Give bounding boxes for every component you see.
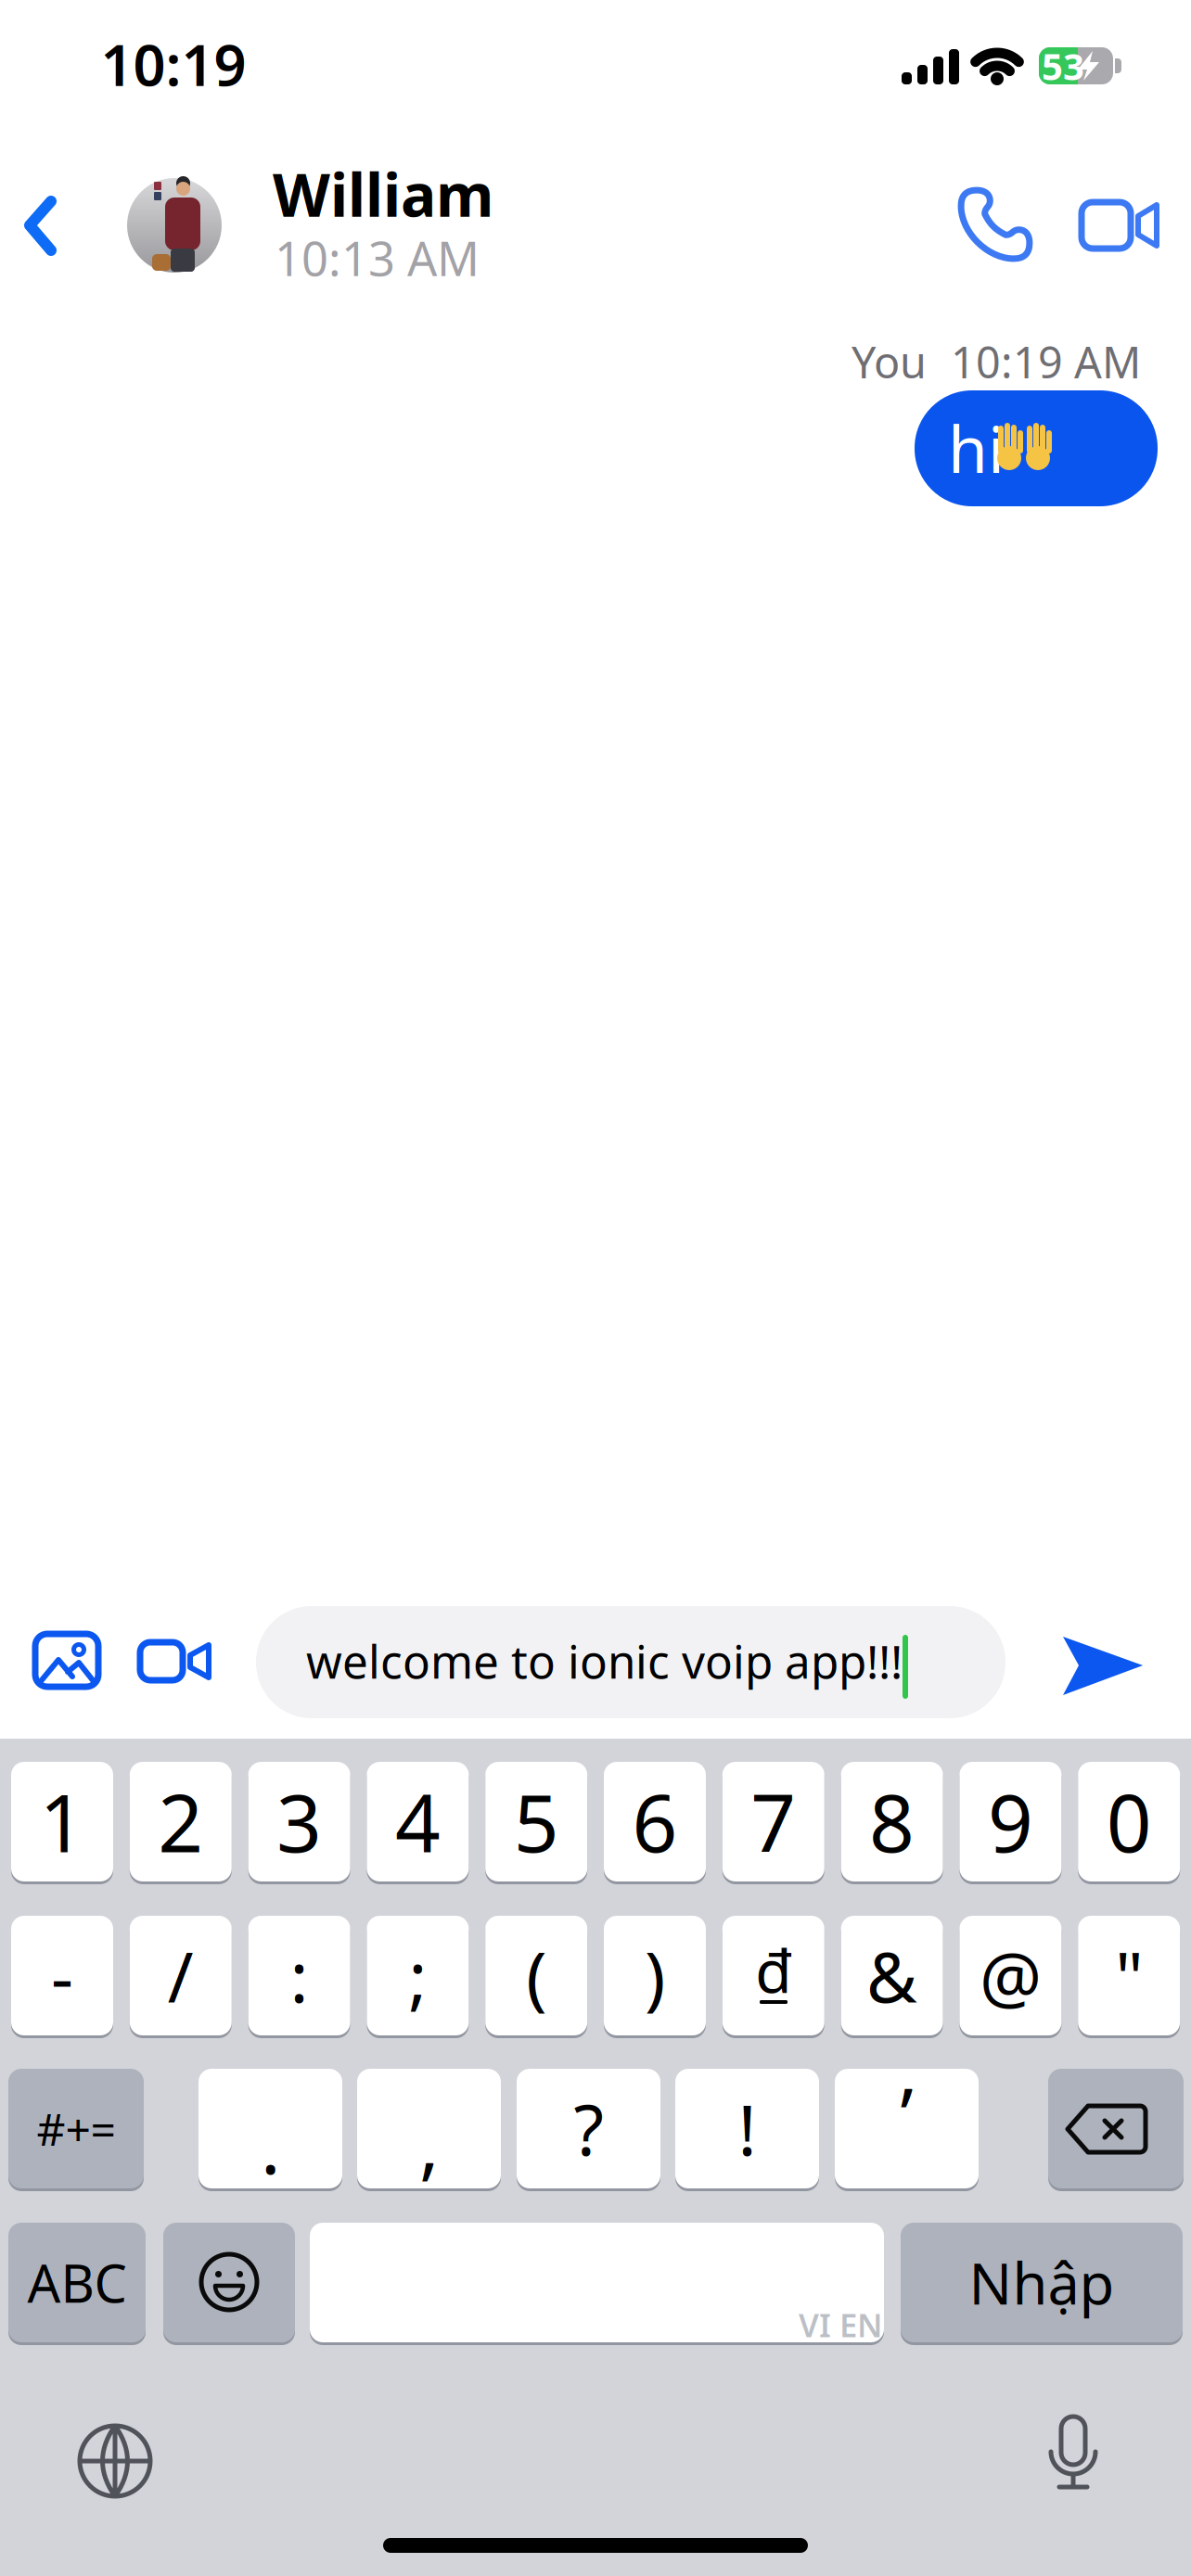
staticText: 3 <box>277 1769 322 1874</box>
staticText: đ <box>755 1931 791 2009</box>
staticText: 7 <box>751 1769 796 1874</box>
staticText: ( <box>526 1930 547 2022</box>
staticText: & <box>866 1930 917 2022</box>
staticText: #+= <box>37 2099 115 2158</box>
staticText: 53 <box>1042 41 1084 90</box>
staticText: 10:19 <box>101 26 246 102</box>
staticText: 10:13 AM <box>275 227 480 289</box>
staticText: 2 <box>158 1769 203 1874</box>
staticText: ) <box>645 1930 665 2022</box>
staticText: , <box>419 2094 439 2193</box>
staticText: 0 <box>1106 1769 1152 1874</box>
staticText: 10:19 AM <box>951 333 1141 390</box>
staticText: 4 <box>395 1769 441 1874</box>
staticText: 9 <box>988 1769 1033 1874</box>
staticText: 5 <box>514 1769 559 1874</box>
staticText: 6 <box>632 1769 678 1874</box>
staticText: ’ <box>900 2065 913 2163</box>
staticText: - <box>51 1930 73 2022</box>
staticText: ; <box>409 1930 427 2022</box>
staticText: . <box>261 2096 280 2195</box>
staticText: VI EN <box>799 2303 882 2346</box>
staticText: hi <box>948 405 1005 491</box>
staticText: " <box>1115 1930 1143 2022</box>
staticText: William <box>273 154 493 233</box>
staticText: / <box>168 1930 194 2022</box>
staticText: ? <box>574 2083 603 2175</box>
staticText: 1 <box>39 1769 85 1874</box>
staticText: 8 <box>869 1769 915 1874</box>
staticText: Nhập <box>969 2245 1114 2320</box>
staticText: ! <box>738 2083 756 2175</box>
staticText: ABC <box>27 2248 127 2317</box>
staticText: welcome to ionic voip app!!! <box>306 1630 903 1691</box>
staticText: You <box>852 333 927 390</box>
staticText: : <box>290 1930 309 2022</box>
staticText: @ <box>979 1930 1042 2022</box>
